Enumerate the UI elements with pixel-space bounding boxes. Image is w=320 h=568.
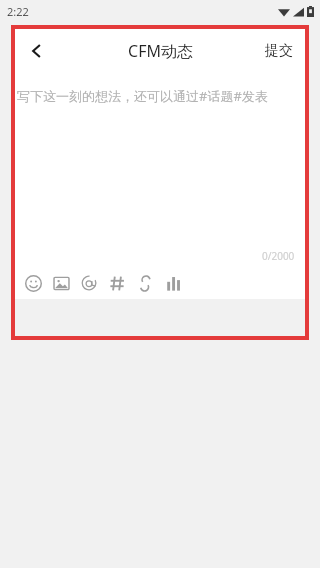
staticText: CFM动态: [128, 40, 193, 62]
button[interactable]: Emoji: [19, 269, 47, 297]
staticText: 2:22: [7, 4, 29, 19]
staticText: 提交: [265, 42, 293, 60]
button[interactable]: Mention: [75, 269, 103, 297]
button[interactable]: Topic: [103, 269, 131, 297]
button[interactable]: Image: [47, 269, 75, 297]
button[interactable]: 写下这一刻的想法，还可以通过#话题#发表: [15, 73, 305, 267]
staticText: 0/2000: [262, 249, 295, 263]
staticText: 写下这一刻的想法，还可以通过#话题#发表: [17, 87, 268, 105]
button[interactable]: 提交: [253, 32, 305, 70]
button[interactable]: Back: [15, 29, 59, 73]
button[interactable]: Poll: [159, 269, 187, 297]
button[interactable]: Link: [131, 269, 159, 297]
